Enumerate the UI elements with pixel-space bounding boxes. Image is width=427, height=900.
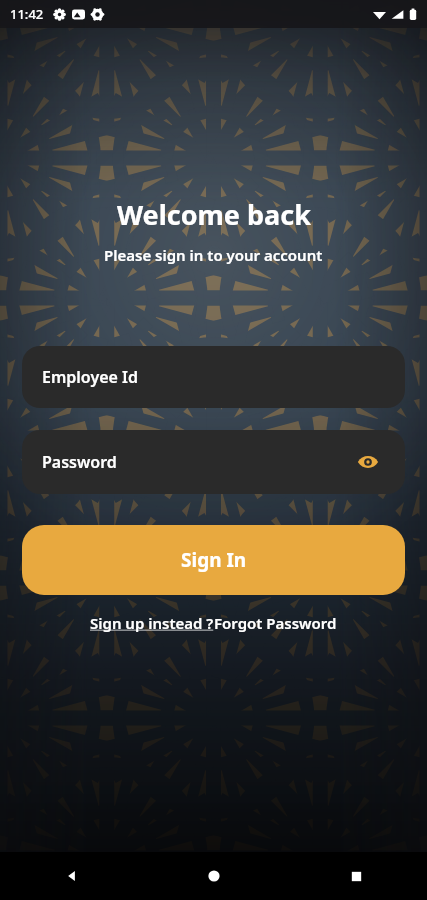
staticText: Sign up instead ? bbox=[90, 613, 214, 633]
staticText: Welcome back bbox=[117, 196, 311, 233]
staticText: Employee Id bbox=[42, 366, 138, 388]
button[interactable]: Recent apps bbox=[285, 852, 427, 900]
staticText: Password bbox=[42, 451, 117, 473]
staticText: Please sign in to your account bbox=[104, 245, 323, 265]
button[interactable]: Show password bbox=[351, 445, 385, 479]
button[interactable]: Password bbox=[22, 430, 405, 494]
staticText: 11:42 bbox=[10, 5, 44, 23]
button[interactable]: Sign In bbox=[22, 525, 405, 595]
staticText: Sign In bbox=[181, 547, 247, 573]
button[interactable]: Forgot Password bbox=[214, 613, 337, 633]
staticText: Forgot Password bbox=[214, 613, 337, 633]
button[interactable]: Back bbox=[0, 852, 143, 900]
button[interactable]: Sign up instead ? bbox=[90, 613, 214, 633]
button[interactable]: Employee Id bbox=[22, 346, 405, 408]
button[interactable]: Home bbox=[143, 852, 285, 900]
